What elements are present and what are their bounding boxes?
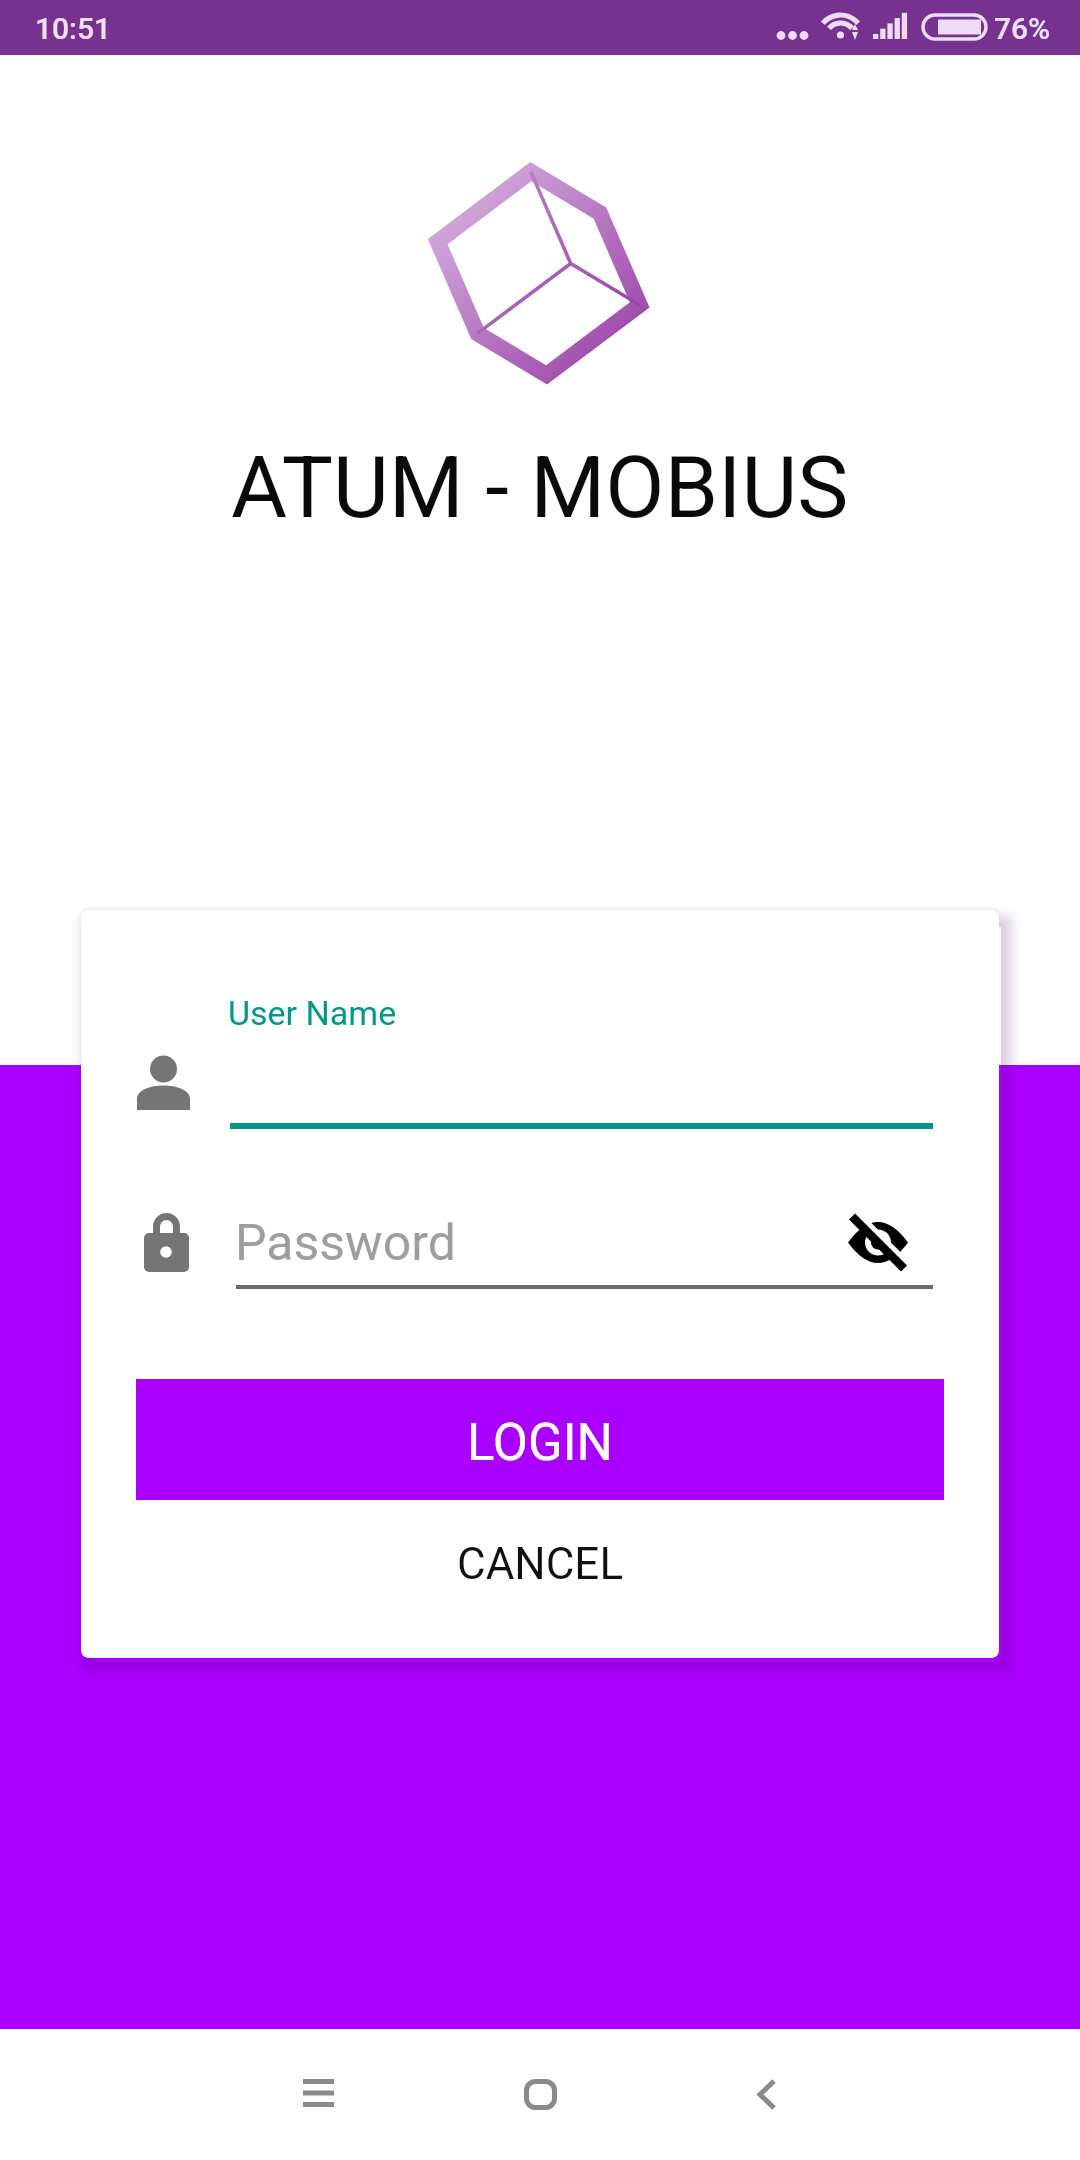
staticText: ATUM - MOBIUS (231, 437, 849, 538)
staticText: 76% (994, 11, 1051, 46)
staticText: Password (235, 1214, 456, 1273)
button[interactable]: Home (480, 2033, 600, 2153)
button[interactable]: Recent apps (258, 2033, 378, 2153)
staticText: CANCEL (457, 1538, 624, 1590)
button[interactable]: LOGIN (136, 1379, 944, 1500)
staticText: User Name (228, 993, 397, 1033)
button[interactable]: Show password (833, 1198, 923, 1288)
button[interactable]: CANCEL (136, 1519, 944, 1609)
button[interactable]: Back (707, 2033, 827, 2153)
staticText: 10:51 (35, 11, 112, 46)
staticText: LOGIN (467, 1413, 613, 1473)
button[interactable]: Password field (231, 1200, 831, 1295)
button[interactable]: User Name field (228, 985, 938, 1135)
